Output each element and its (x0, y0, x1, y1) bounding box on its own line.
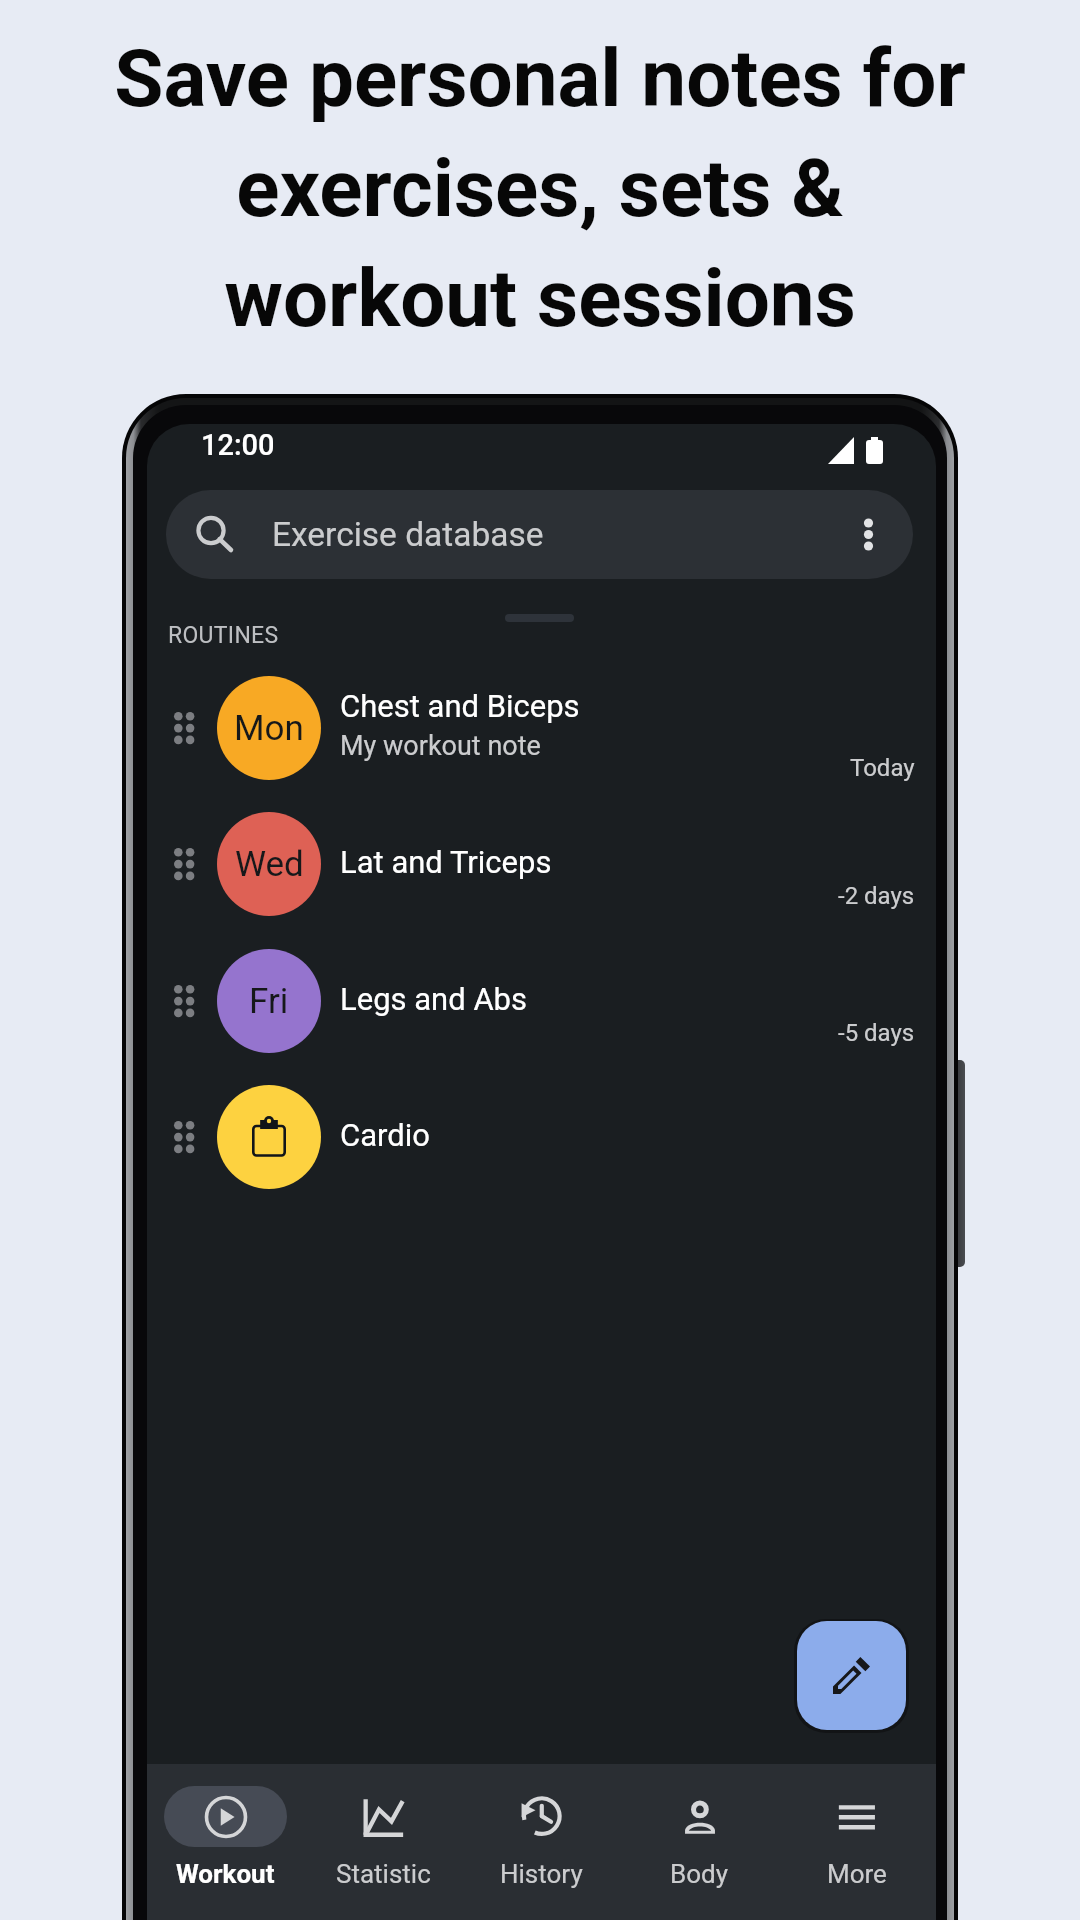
button[interactable]: History (462, 1764, 620, 1920)
staticText: More (827, 1859, 887, 1889)
staticText: -2 days (838, 882, 915, 910)
staticText: Workout (176, 1859, 275, 1889)
button[interactable]: Fri (147, 933, 936, 1069)
staticText: History (500, 1859, 583, 1889)
button[interactable]: Wed (147, 796, 936, 932)
staticText: Today (850, 754, 915, 782)
button[interactable]: Statistic (304, 1764, 462, 1920)
staticText: Statistic (336, 1859, 431, 1889)
staticText: 12:00 (201, 428, 275, 462)
staticText: Save personal notes for exercises, sets … (0, 32, 1080, 346)
staticText: Wed (235, 844, 304, 885)
staticText: -5 days (838, 1019, 915, 1047)
staticText: Lat and Triceps (340, 844, 552, 880)
staticText: Body (670, 1859, 728, 1889)
staticText: Mon (234, 708, 304, 749)
button[interactable]: Mon (147, 660, 936, 796)
staticText: Cardio (340, 1117, 430, 1153)
staticText: Chest and Biceps (340, 688, 580, 724)
staticText: My workout note (340, 730, 541, 762)
staticText: Legs and Abs (340, 981, 528, 1017)
button[interactable]: Workout (147, 1764, 304, 1920)
staticText: Fri (249, 981, 289, 1022)
button[interactable]: Edit (797, 1621, 906, 1730)
button[interactable]: More (778, 1764, 936, 1920)
staticText: Exercise database (272, 515, 544, 554)
button[interactable]: Body (620, 1764, 778, 1920)
staticText: ROUTINES (168, 622, 279, 649)
button[interactable]: Exercise database (166, 490, 913, 579)
button[interactable]: More options (846, 495, 891, 575)
button[interactable]: Cardio (147, 1069, 936, 1205)
